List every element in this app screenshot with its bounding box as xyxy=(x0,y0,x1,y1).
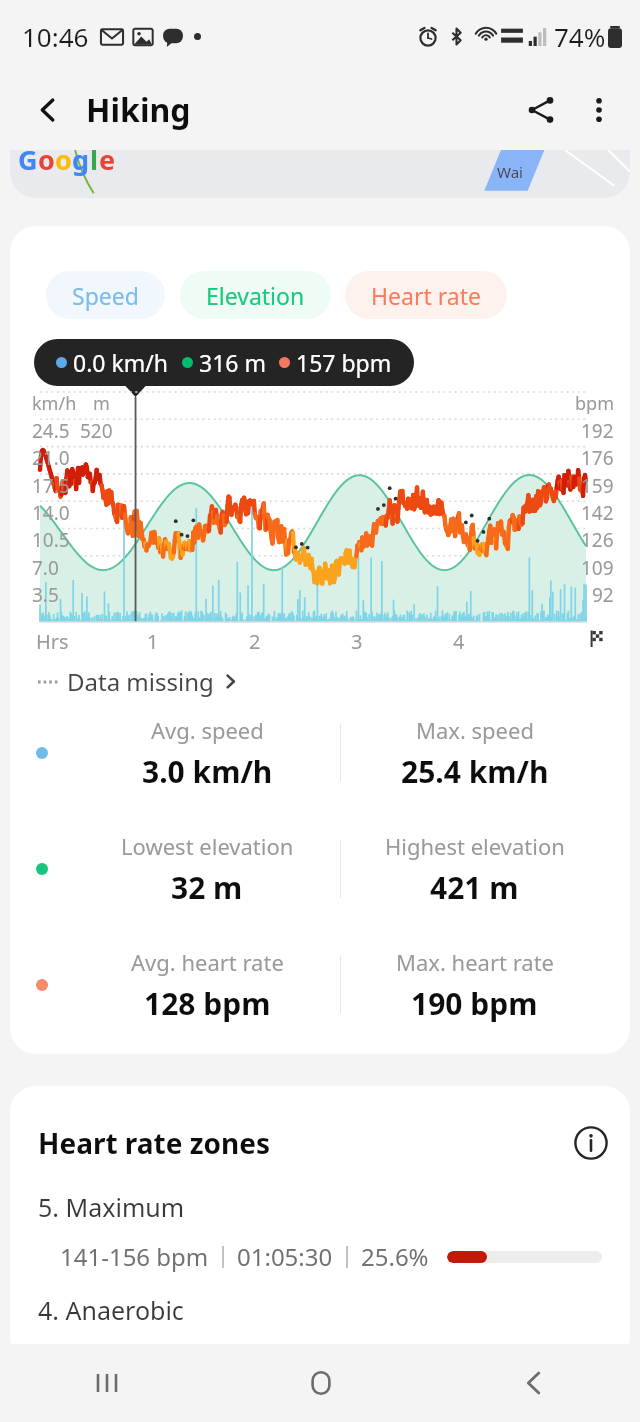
staticText: 159 xyxy=(581,473,614,499)
staticText: 4 xyxy=(453,628,465,655)
staticText: 92 xyxy=(592,582,614,608)
staticText: km/h xyxy=(32,391,77,416)
staticText: e xyxy=(99,150,116,178)
staticText: 7.0 xyxy=(32,555,59,581)
staticText: 3.0 km/h xyxy=(142,751,273,792)
staticText: g xyxy=(72,150,90,178)
button[interactable]: 0.0 km/h xyxy=(34,339,414,386)
staticText: Speed xyxy=(72,280,139,311)
staticText: 21.0 xyxy=(32,445,70,471)
staticText: 192 xyxy=(581,418,614,444)
staticText: 142 xyxy=(581,500,614,526)
staticText: Wai xyxy=(497,162,523,182)
staticText: G xyxy=(18,150,38,178)
staticText: 3.5 xyxy=(32,582,59,608)
staticText: 14.0 xyxy=(32,500,70,526)
staticText: 24.5 xyxy=(32,418,70,444)
staticText: Hrs xyxy=(36,628,69,655)
staticText: 520 xyxy=(80,418,113,444)
staticText: Max. speed xyxy=(416,715,534,745)
staticText: 141-156 bpm xyxy=(60,1240,209,1273)
staticText: 25.4 km/h xyxy=(401,751,549,792)
staticText: Avg. heart rate xyxy=(131,947,284,977)
staticText: o xyxy=(38,150,55,178)
staticText: Data missing xyxy=(67,665,214,698)
staticText: Heart rate xyxy=(371,280,481,311)
staticText: Elevation xyxy=(206,280,305,311)
staticText: bpm xyxy=(575,391,614,416)
button[interactable]: G xyxy=(10,150,630,198)
staticText: 3 xyxy=(351,628,363,655)
staticText: 17.5 xyxy=(32,473,70,499)
staticText: Avg. speed xyxy=(151,715,264,745)
staticText: o xyxy=(55,150,72,178)
button[interactable]: Data missing xyxy=(38,665,239,698)
staticText: 421 m xyxy=(430,867,519,908)
staticText: 128 bpm xyxy=(144,983,271,1024)
staticText: 74% xyxy=(554,19,606,54)
button[interactable]: More options xyxy=(570,81,628,139)
staticText: 5. Maximum xyxy=(38,1190,185,1224)
button[interactable]: Information xyxy=(568,1120,614,1166)
staticText: 0.0 km/h xyxy=(73,347,169,378)
staticText: Lowest elevation xyxy=(121,831,294,861)
staticText: 109 xyxy=(581,555,614,581)
button[interactable]: Home xyxy=(214,1344,427,1422)
staticText: 1 xyxy=(147,628,159,655)
staticText: Heart rate zones xyxy=(38,1124,271,1162)
staticText: 126 xyxy=(581,527,614,553)
staticText: Max. heart rate xyxy=(396,947,554,977)
staticText: 4. Anaerobic xyxy=(38,1293,184,1327)
staticText: 10.5 xyxy=(32,527,70,553)
button[interactable]: Back xyxy=(20,82,76,138)
staticText: 157 bpm xyxy=(296,347,392,378)
staticText: l xyxy=(90,150,99,178)
staticText: 190 bpm xyxy=(411,983,538,1024)
staticText: Highest elevation xyxy=(385,831,565,861)
staticText: m xyxy=(93,391,110,416)
staticText: 316 m xyxy=(199,347,266,378)
button[interactable]: Speed xyxy=(46,271,165,319)
staticText: 25.6% xyxy=(361,1240,429,1273)
button[interactable]: Heart rate xyxy=(345,271,507,319)
button[interactable]: Share xyxy=(512,81,570,139)
button[interactable]: Elevation xyxy=(180,271,331,319)
button[interactable]: 141-156 bpm xyxy=(60,1240,630,1273)
staticText: 2 xyxy=(249,628,261,655)
staticText: 176 xyxy=(581,445,614,471)
staticText: Hiking xyxy=(86,88,191,132)
staticText: 32 m xyxy=(171,867,243,908)
button[interactable]: Recents xyxy=(0,1344,214,1422)
button[interactable]: Back xyxy=(427,1344,640,1422)
staticText: 01:05:30 xyxy=(237,1240,333,1273)
staticText: 10:46 xyxy=(22,19,89,54)
